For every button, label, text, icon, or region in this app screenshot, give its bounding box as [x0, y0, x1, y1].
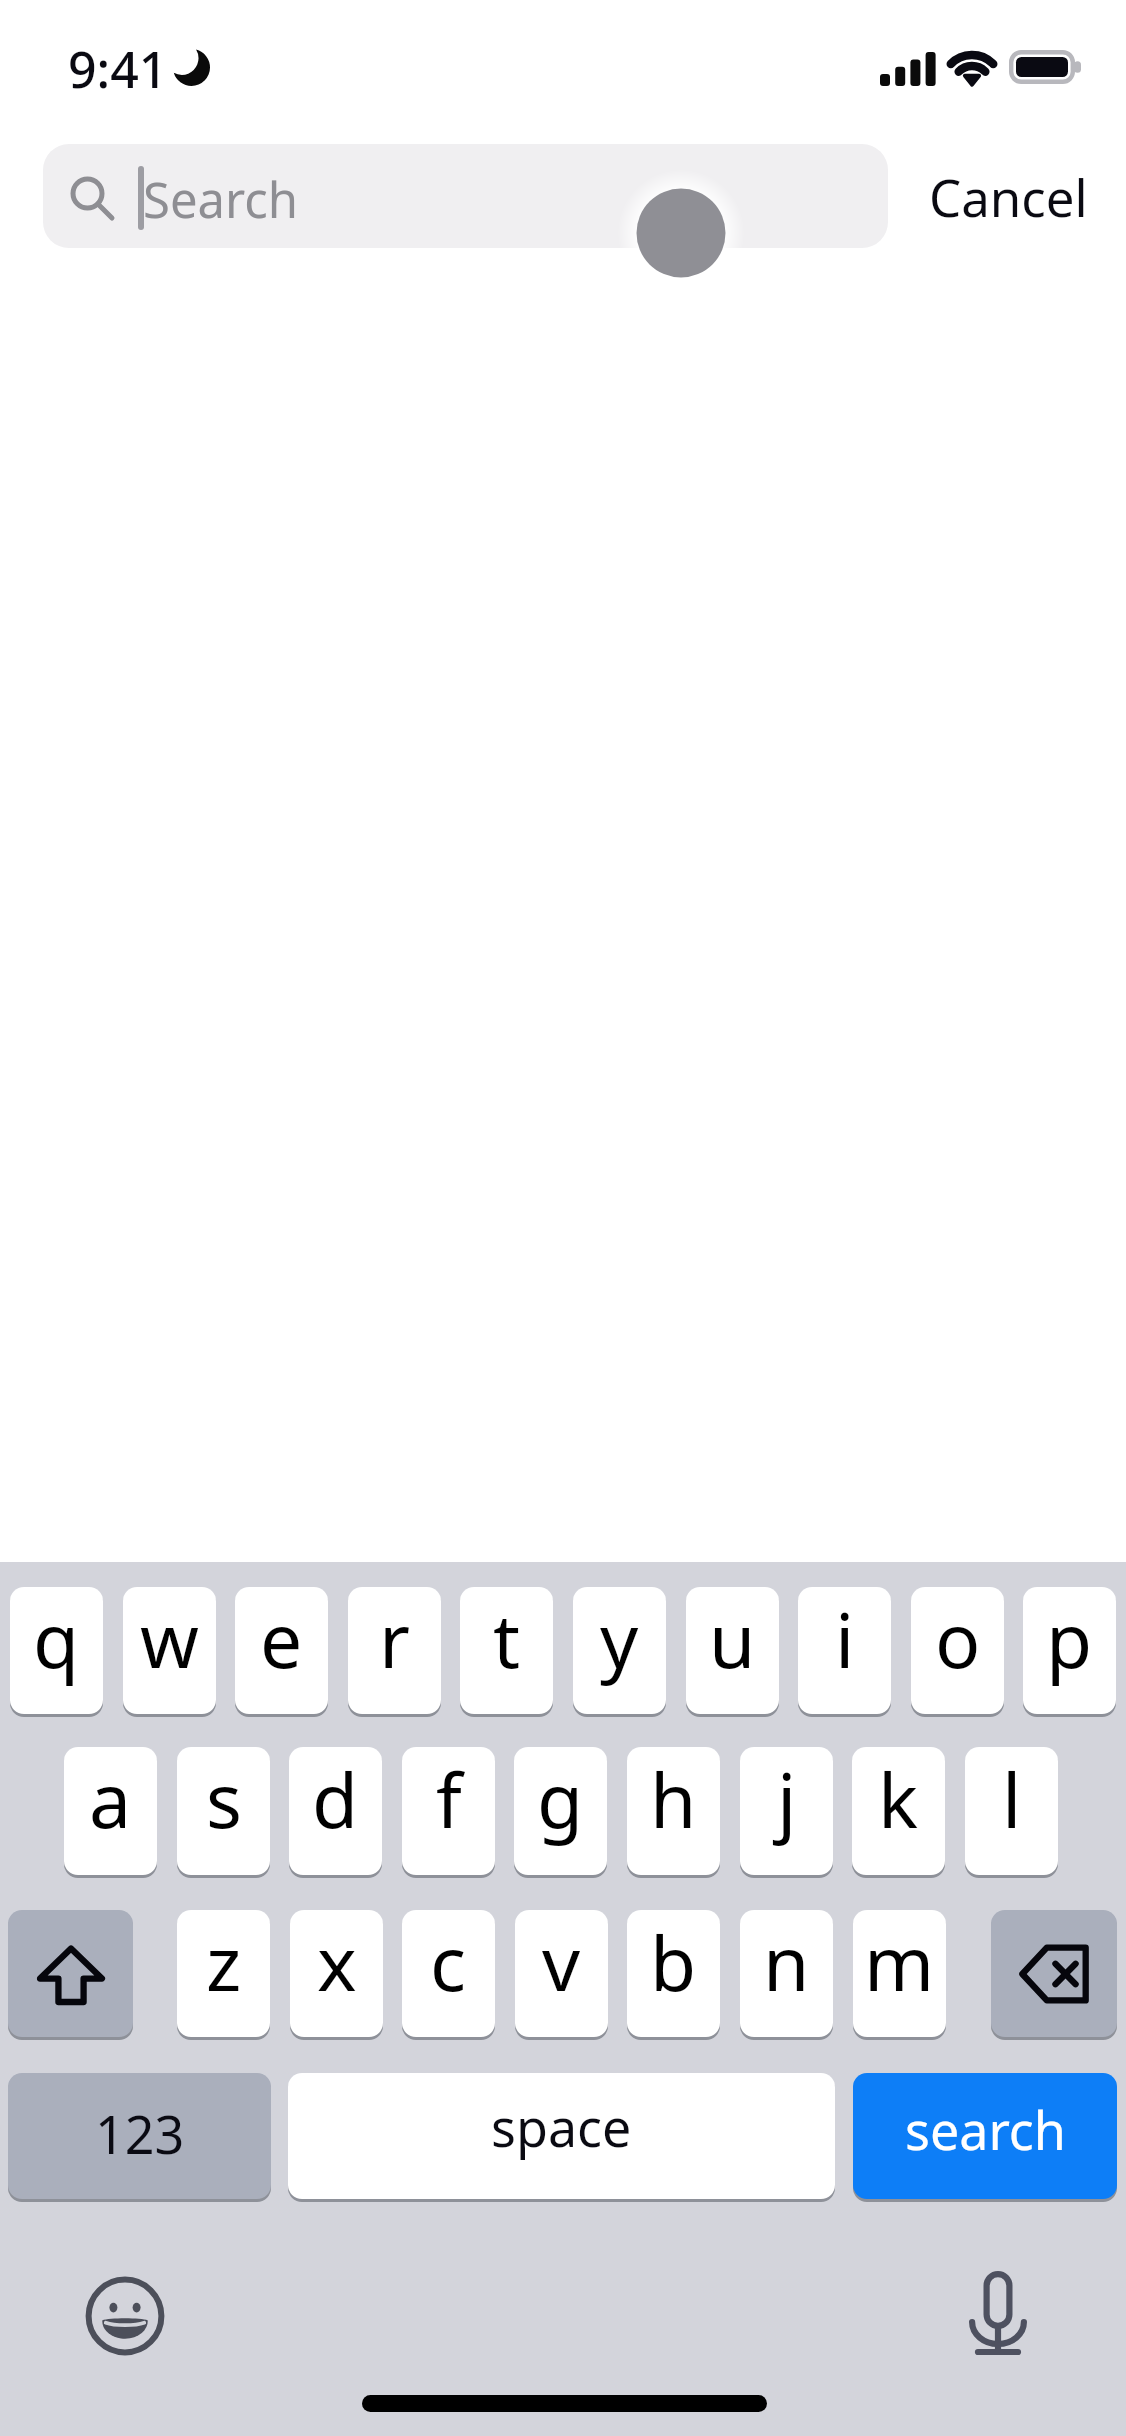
staticText: g	[537, 1748, 584, 1850]
button[interactable]: d	[289, 1747, 382, 1875]
button[interactable]: search	[853, 2073, 1117, 2199]
button[interactable]: z	[177, 1910, 270, 2037]
staticText: d	[312, 1748, 359, 1850]
staticText: k	[878, 1748, 919, 1850]
button[interactable]: Cancel	[914, 150, 1102, 242]
button[interactable]: s	[177, 1747, 270, 1875]
button[interactable]: Dictate	[966, 2268, 1030, 2360]
button[interactable]: c	[402, 1910, 495, 2037]
staticText: f	[436, 1748, 462, 1850]
button[interactable]: m	[853, 1910, 946, 2037]
button[interactable]: Shift	[8, 1910, 133, 2037]
staticText: c	[430, 1911, 467, 2013]
button[interactable]: e	[235, 1587, 328, 1714]
button[interactable]: b	[627, 1910, 720, 2037]
staticText: search	[905, 2094, 1066, 2165]
button[interactable]: x	[290, 1910, 383, 2037]
button[interactable]: q	[10, 1587, 103, 1714]
staticText: o	[935, 1588, 981, 1690]
button[interactable]: l	[965, 1747, 1058, 1875]
staticText: space	[491, 2091, 632, 2162]
staticText: s	[206, 1748, 242, 1850]
staticText: t	[493, 1588, 521, 1690]
staticText: a	[89, 1748, 132, 1850]
staticText: j	[777, 1748, 797, 1850]
staticText: m	[864, 1911, 935, 2013]
button[interactable]: Emoji keyboard	[85, 2276, 165, 2356]
staticText: z	[206, 1911, 242, 2013]
button[interactable]: k	[852, 1747, 945, 1875]
staticText: p	[1046, 1588, 1093, 1690]
staticText: n	[763, 1911, 810, 2013]
staticText: r	[379, 1588, 410, 1690]
button[interactable]: n	[740, 1910, 833, 2037]
button[interactable]: j	[740, 1747, 833, 1875]
button[interactable]: space	[288, 2073, 835, 2199]
staticText: q	[33, 1588, 80, 1690]
button[interactable]: h	[627, 1747, 720, 1875]
staticText: l	[1002, 1748, 1022, 1850]
button[interactable]: u	[686, 1587, 779, 1714]
button[interactable]: a	[64, 1747, 157, 1875]
staticText: y	[600, 1588, 639, 1690]
button[interactable]: v	[515, 1910, 608, 2037]
button[interactable]: Backspace	[991, 1910, 1117, 2037]
staticText: 9:41	[68, 35, 168, 103]
button[interactable]: 123	[8, 2073, 271, 2199]
button[interactable]: t	[460, 1587, 553, 1714]
button[interactable]: o	[911, 1587, 1004, 1714]
button[interactable]: y	[573, 1587, 666, 1714]
staticText: i	[835, 1588, 855, 1690]
staticText: e	[260, 1588, 303, 1690]
button[interactable]: f	[402, 1747, 495, 1875]
staticText: x	[317, 1911, 357, 2013]
button[interactable]: i	[798, 1587, 891, 1714]
staticText: u	[709, 1588, 756, 1690]
staticText: 123	[95, 2098, 185, 2169]
button[interactable]: p	[1023, 1587, 1116, 1714]
button[interactable]: g	[514, 1747, 607, 1875]
staticText: b	[650, 1911, 697, 2013]
button[interactable]: w	[123, 1587, 216, 1714]
staticText: w	[140, 1588, 199, 1690]
staticText: h	[650, 1748, 697, 1850]
staticText: Cancel	[929, 162, 1088, 231]
button[interactable]: Search	[43, 144, 888, 248]
button[interactable]: r	[348, 1587, 441, 1714]
staticText: Search	[143, 166, 299, 233]
staticText: v	[542, 1911, 581, 2013]
